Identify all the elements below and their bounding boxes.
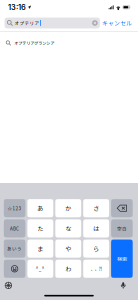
staticText: か [65, 204, 71, 213]
button[interactable]: ま [27, 239, 53, 258]
staticText: な [65, 224, 71, 233]
staticText: キャンセル [102, 19, 132, 27]
staticText: オプテリアグランシア [14, 40, 54, 46]
button[interactable]: た [27, 219, 53, 237]
button[interactable]: ☆123 [4, 199, 25, 217]
button[interactable]: あいう [4, 239, 25, 258]
staticText: 検索 [117, 255, 127, 262]
button[interactable]: 空白 [111, 219, 133, 237]
staticText: ら [93, 244, 99, 253]
button[interactable]: や [55, 239, 81, 258]
button[interactable]: ABC [4, 219, 25, 237]
button[interactable]: Emoji [4, 260, 25, 278]
staticText: ABC [10, 225, 19, 232]
staticText: オプテリア [14, 20, 39, 26]
staticText: 13:16 [8, 3, 26, 12]
staticText: 空白 [117, 225, 127, 232]
button[interactable]: わ [55, 260, 81, 278]
button[interactable]: Delete [111, 199, 133, 217]
staticText: 、。?! [91, 266, 102, 272]
staticText: は [93, 224, 99, 233]
staticText: ☆123 [8, 205, 22, 211]
button[interactable]: ら [83, 239, 109, 258]
button[interactable]: キャンセル [100, 17, 134, 29]
staticText: わ [65, 264, 71, 273]
button[interactable]: な [55, 219, 81, 237]
button[interactable]: か [55, 199, 81, 217]
staticText: や [65, 244, 71, 253]
staticText: さ [93, 204, 99, 213]
button[interactable]: 、。?! [83, 260, 109, 278]
button[interactable]: オプテリアグランシア [0, 32, 138, 54]
staticText: た [37, 224, 43, 233]
staticText: ま [37, 244, 43, 253]
staticText: あ [37, 204, 43, 213]
button[interactable]: さ [83, 199, 109, 217]
button[interactable]: あ [27, 199, 53, 217]
button[interactable]: Next keyboard [2, 279, 14, 291]
button[interactable]: は [83, 219, 109, 237]
button[interactable]: ^_^ [27, 260, 53, 278]
button[interactable]: Dictation [117, 279, 129, 291]
staticText: あいう [7, 245, 22, 252]
button[interactable]: 検索 [111, 239, 133, 278]
staticText: ^_^ [36, 265, 45, 272]
